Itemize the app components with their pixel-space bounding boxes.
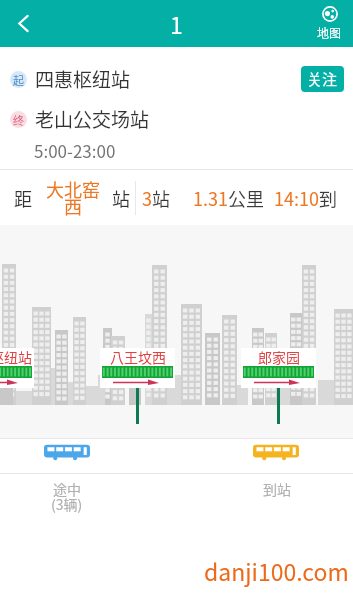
button[interactable]: 关注 <box>301 66 344 92</box>
staticText: 1 <box>170 7 183 40</box>
staticText: 途中 <box>53 479 81 499</box>
staticText: 距 <box>14 185 32 211</box>
staticText: 终 <box>13 112 24 128</box>
staticText: 关注 <box>307 68 338 90</box>
staticText: danji100.com <box>204 554 349 587</box>
staticText: 1.31公里 <box>193 185 264 211</box>
staticText: 四惠枢纽站 <box>0 347 32 367</box>
staticText: 到站 <box>263 479 291 499</box>
staticText: 起 <box>13 72 24 88</box>
staticText: 站 <box>112 185 130 211</box>
staticText: 大北窑西 <box>46 176 100 220</box>
staticText: 5:00-23:00 <box>34 138 116 163</box>
staticText: 四惠枢纽站 <box>35 65 131 93</box>
staticText: (3辆) <box>51 494 83 514</box>
staticText: 郎家园 <box>258 347 300 367</box>
staticText: 地图 <box>317 24 342 41</box>
staticText: 老山公交场站 <box>35 105 150 133</box>
staticText: 3站 <box>142 185 170 211</box>
button[interactable]: Back <box>0 0 46 47</box>
button[interactable]: 地图 <box>306 0 353 47</box>
staticText: 八王坟西 <box>110 347 166 367</box>
staticText: 14:10到 <box>274 185 337 211</box>
